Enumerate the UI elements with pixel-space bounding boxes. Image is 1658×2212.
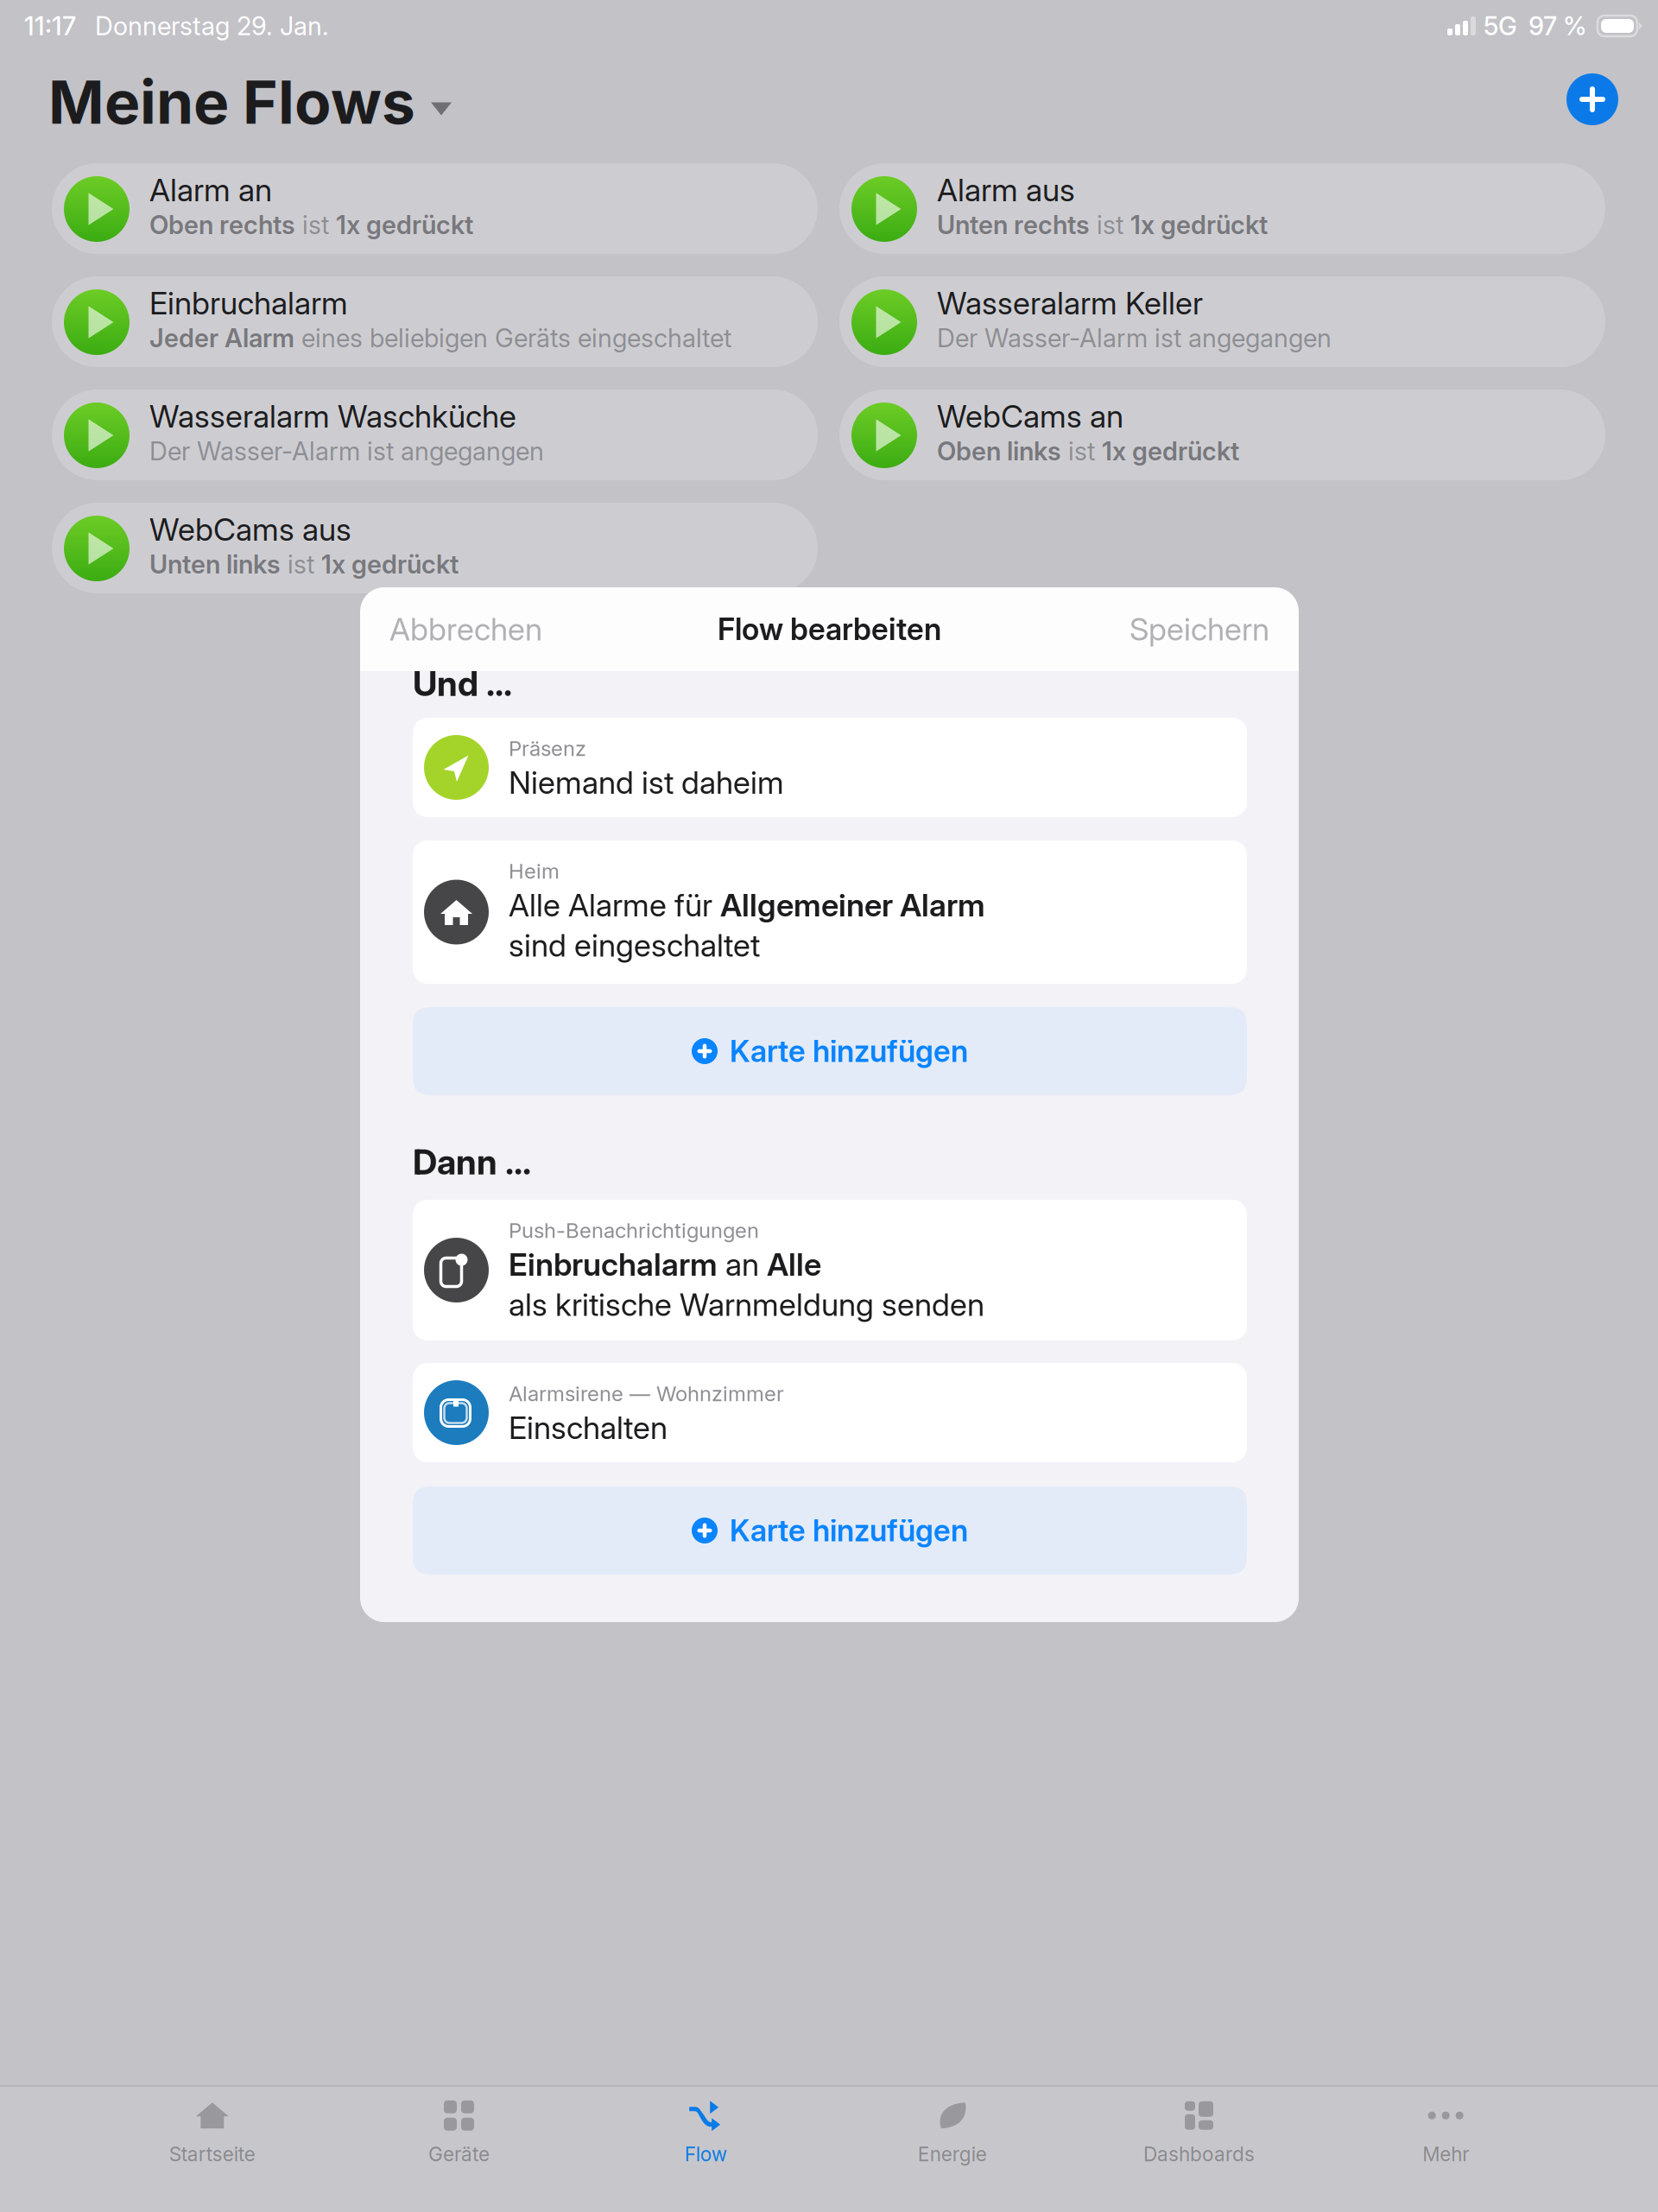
button[interactable]: Flow (582, 2088, 829, 2211)
staticText: Alarmsirene — Wohnzimmer (509, 1381, 784, 1406)
staticText: Startseite (169, 2142, 255, 2166)
button[interactable]: WebCams an (839, 390, 1605, 480)
button[interactable]: Alarmsirene — Wohnzimmer (413, 1363, 1247, 1462)
button[interactable]: Abbrechen (360, 587, 666, 671)
staticText: Und ... (413, 662, 512, 704)
staticText: als kritische Warnmeldung senden (509, 1286, 984, 1323)
staticText: Wasseralarm Waschküche (149, 397, 516, 435)
staticText: Dashboards (1143, 2142, 1255, 2166)
staticText: 1x gedrückt (336, 210, 473, 240)
staticText: ist (1090, 210, 1130, 240)
staticText: an (718, 1245, 767, 1283)
staticText: 1x gedrückt (1130, 210, 1268, 240)
staticText: Karte hinzufügen (730, 1512, 968, 1549)
staticText: WebCams an (937, 397, 1123, 435)
button[interactable]: Push-Benachrichtigungen (413, 1200, 1247, 1341)
staticText: Flow bearbeiten (718, 611, 941, 647)
button[interactable]: Wasseralarm Keller (839, 276, 1605, 367)
staticText: Alle (767, 1245, 821, 1283)
staticText: Der Wasser-Alarm ist angegangen (937, 323, 1332, 353)
staticText: eines beliebigen Geräts eingeschaltet (294, 323, 731, 353)
staticText: WebCams aus (149, 510, 351, 548)
staticText: Unten links (149, 549, 281, 580)
button[interactable]: Karte hinzufügen (413, 1007, 1247, 1095)
staticText: Dann ... (413, 1141, 531, 1183)
button[interactable]: Geräte (336, 2088, 582, 2211)
button[interactable]: Heim (413, 840, 1247, 984)
staticText: 1x gedrückt (321, 549, 459, 580)
staticText: Oben links (937, 436, 1061, 466)
staticText: Energie (918, 2142, 987, 2166)
staticText: Alarm aus (937, 171, 1075, 209)
staticText: Der Wasser-Alarm ist angegangen (149, 436, 544, 466)
staticText: Allgemeiner Alarm (720, 886, 985, 924)
button[interactable]: Energie (829, 2088, 1076, 2211)
staticText: Niemand ist daheim (509, 764, 784, 801)
staticText: Meine Flows (48, 66, 415, 138)
staticText: Push-Benachrichtigungen (509, 1218, 759, 1243)
staticText: Einschalten (509, 1409, 668, 1446)
staticText: ist (295, 210, 336, 240)
button[interactable]: Wasseralarm Waschküche (52, 390, 818, 480)
staticText: Oben rechts (149, 210, 295, 240)
staticText: 97 % (1528, 11, 1587, 41)
staticText: Heim (509, 859, 560, 884)
staticText: Einbruchalarm (149, 284, 348, 322)
staticText: 1x gedrückt (1102, 436, 1239, 466)
staticText: Flow (685, 2142, 727, 2166)
button[interactable]: Alarm an (52, 163, 818, 254)
staticText: ist (281, 549, 321, 580)
button[interactable]: Einbruchalarm (52, 276, 818, 367)
button[interactable]: WebCams aus (52, 503, 818, 593)
staticText: 11:17 (24, 11, 76, 41)
staticText: 5G (1484, 11, 1517, 41)
button[interactable]: Mehr (1322, 2088, 1569, 2211)
staticText: Wasseralarm Keller (937, 284, 1203, 322)
staticText: Unten rechts (937, 210, 1090, 240)
button[interactable]: Präsenz (413, 718, 1247, 817)
staticText: Karte hinzufügen (730, 1033, 968, 1069)
button[interactable]: Karte hinzufügen (413, 1486, 1247, 1575)
staticText: sind eingeschaltet (509, 926, 760, 964)
staticText: Donnerstag 29. Jan. (95, 11, 329, 41)
staticText: Einbruchalarm (509, 1245, 718, 1283)
staticText: Alarm an (149, 171, 272, 209)
staticText: Präsenz (509, 736, 586, 761)
button[interactable]: Startseite (89, 2088, 336, 2211)
staticText: Speichern (1130, 610, 1269, 648)
staticText: Alle Alarme für (509, 886, 720, 924)
staticText: Geräte (428, 2142, 490, 2166)
staticText: Abbrechen (389, 610, 542, 648)
button[interactable]: Speichern (993, 587, 1299, 671)
button[interactable]: Alarm aus (839, 163, 1605, 254)
staticText: ist (1061, 436, 1102, 466)
staticText: Jeder Alarm (149, 323, 294, 353)
staticText: Mehr (1422, 2142, 1469, 2166)
button[interactable]: Meine Flows (0, 61, 452, 138)
button[interactable]: Flow hinzufügen (1566, 73, 1658, 125)
button[interactable]: Dashboards (1076, 2088, 1322, 2211)
